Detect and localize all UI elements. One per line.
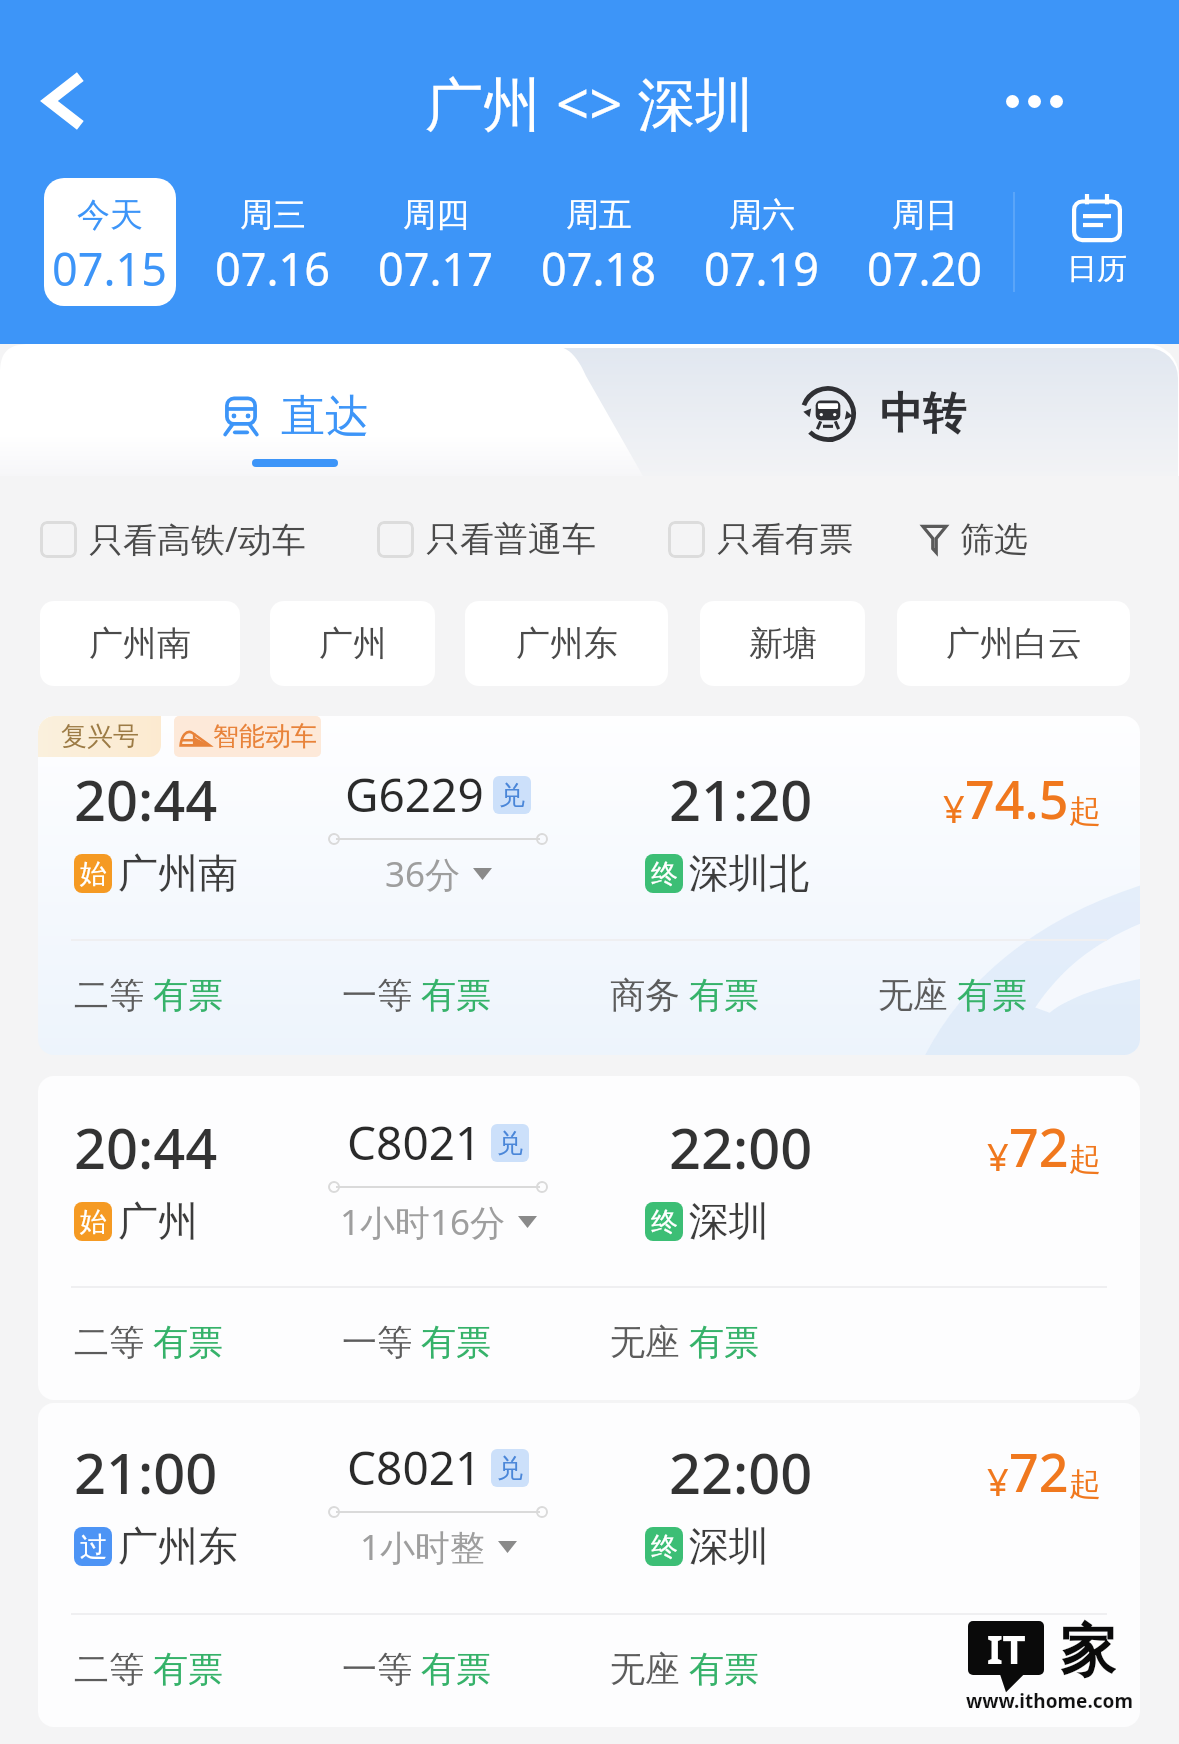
- staticText: 周六: [729, 194, 795, 236]
- staticText: 只看普通车: [426, 518, 596, 561]
- staticText: 21:00: [74, 1434, 218, 1510]
- staticText: 起: [1069, 1139, 1101, 1179]
- staticText: 深圳: [689, 1196, 769, 1246]
- staticText: 周日: [892, 194, 958, 236]
- staticText: 商务: [610, 973, 680, 1017]
- staticText: C8021: [347, 1111, 482, 1174]
- staticText: 有票: [421, 1647, 491, 1691]
- staticText: 07.17: [378, 238, 494, 299]
- staticText: 22:00: [669, 1434, 813, 1510]
- button[interactable]: Back: [14, 53, 110, 149]
- staticText: 36分: [385, 850, 461, 898]
- staticText: 21:20: [669, 761, 813, 837]
- staticText: 07.20: [867, 238, 983, 299]
- staticText: 终: [651, 857, 678, 891]
- staticText: www.ithome.com: [966, 1688, 1133, 1714]
- button[interactable]: 只看有票: [668, 498, 853, 580]
- button[interactable]: 今天: [44, 178, 176, 306]
- button[interactable]: 周四: [370, 178, 502, 306]
- staticText: 一等: [342, 1320, 412, 1364]
- button[interactable]: 广州: [270, 601, 435, 686]
- button[interactable]: 只看普通车: [377, 498, 596, 580]
- staticText: 只看有票: [717, 518, 853, 561]
- staticText: 广州 <> 深圳: [425, 63, 754, 142]
- staticText: 20:44: [74, 761, 218, 837]
- staticText: 1小时16分: [340, 1198, 506, 1246]
- staticText: 兑: [499, 779, 525, 812]
- button[interactable]: 日历: [1027, 178, 1167, 306]
- staticText: 72: [1009, 1111, 1069, 1182]
- button[interactable]: 只看高铁/动车: [40, 498, 306, 580]
- staticText: 有票: [421, 973, 491, 1017]
- staticText: 中转: [880, 387, 966, 441]
- button[interactable]: 广州东: [465, 601, 668, 686]
- staticText: 无座: [610, 1647, 680, 1691]
- staticText: 深圳: [689, 1521, 769, 1571]
- staticText: 广州: [118, 1196, 198, 1246]
- staticText: 一等: [342, 1647, 412, 1691]
- staticText: 07.18: [541, 238, 657, 299]
- staticText: 起: [1069, 791, 1101, 831]
- staticText: 周五: [566, 194, 632, 236]
- staticText: 家: [1060, 1616, 1116, 1680]
- button[interactable]: 新塘: [700, 601, 865, 686]
- staticText: ¥: [987, 1455, 1009, 1507]
- button[interactable]: 广州白云: [897, 601, 1130, 686]
- button[interactable]: 周五: [533, 178, 665, 306]
- button[interactable]: 周日: [859, 178, 991, 306]
- staticText: IT: [987, 1621, 1026, 1675]
- staticText: 兑: [497, 1127, 523, 1160]
- staticText: G6229: [345, 763, 484, 826]
- staticText: 74.5: [965, 763, 1069, 834]
- staticText: 广州: [319, 622, 387, 665]
- button[interactable]: 复兴号: [38, 716, 1140, 1055]
- staticText: 始: [80, 1205, 107, 1239]
- staticText: 有票: [689, 1320, 759, 1364]
- staticText: C8021: [347, 1436, 482, 1499]
- button[interactable]: 20:44: [38, 1076, 1140, 1400]
- staticText: 有票: [689, 973, 759, 1017]
- staticText: 终: [651, 1205, 678, 1239]
- staticText: 07.15: [52, 238, 168, 299]
- button[interactable]: More options: [972, 57, 1096, 145]
- button[interactable]: 中转: [640, 340, 1125, 468]
- staticText: 二等: [74, 1647, 144, 1691]
- staticText: 有票: [153, 973, 223, 1017]
- staticText: 起: [1069, 1464, 1101, 1504]
- staticText: 直达: [281, 389, 369, 444]
- staticText: 07.16: [215, 238, 331, 299]
- button[interactable]: 直达: [0, 340, 588, 472]
- staticText: 22:00: [669, 1109, 813, 1185]
- staticText: 广州白云: [946, 622, 1082, 665]
- staticText: 广州东: [118, 1521, 238, 1571]
- staticText: 无座: [610, 1320, 680, 1364]
- staticText: 有票: [153, 1647, 223, 1691]
- staticText: 筛选: [960, 518, 1028, 561]
- staticText: 1小时整: [360, 1523, 486, 1571]
- button[interactable]: 广州南: [40, 601, 240, 686]
- button[interactable]: 21:00: [38, 1403, 1140, 1727]
- button[interactable]: 周六: [696, 178, 828, 306]
- staticText: 20:44: [74, 1109, 218, 1185]
- staticText: 无座: [878, 973, 948, 1017]
- staticText: 有票: [689, 1647, 759, 1691]
- staticText: 二等: [74, 1320, 144, 1364]
- button[interactable]: 周三: [207, 178, 339, 306]
- staticText: 有票: [421, 1320, 491, 1364]
- staticText: 今天: [77, 194, 143, 236]
- button[interactable]: 筛选: [920, 498, 1028, 580]
- staticText: 兑: [497, 1452, 523, 1485]
- staticText: 智能动车: [213, 720, 317, 753]
- staticText: 72: [1009, 1436, 1069, 1507]
- staticText: 一等: [342, 973, 412, 1017]
- staticText: ¥: [943, 782, 965, 834]
- staticText: 广州南: [118, 848, 238, 898]
- staticText: 始: [80, 857, 107, 891]
- staticText: 深圳北: [689, 848, 809, 898]
- staticText: 周三: [240, 194, 306, 236]
- staticText: 复兴号: [61, 720, 139, 753]
- staticText: 有票: [957, 973, 1027, 1017]
- staticText: 二等: [74, 973, 144, 1017]
- staticText: 过: [80, 1530, 107, 1564]
- staticText: 广州南: [89, 622, 191, 665]
